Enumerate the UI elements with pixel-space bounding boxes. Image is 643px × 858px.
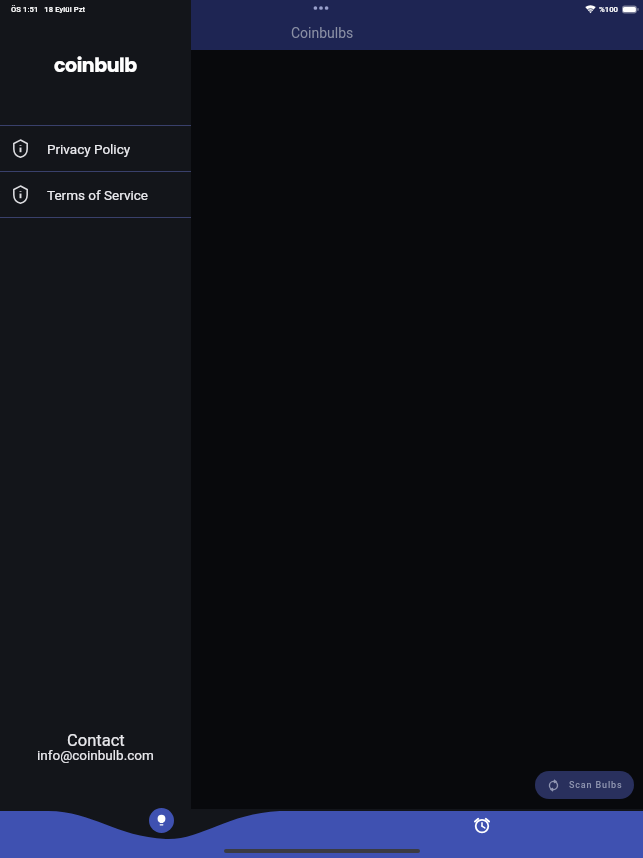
staticText: coinbulb <box>54 52 137 79</box>
staticText: Contact <box>67 731 125 750</box>
staticText: %100 <box>599 5 619 14</box>
staticText: Terms of Service <box>47 187 148 203</box>
button[interactable]: Privacy Policy <box>0 126 191 171</box>
button[interactable]: Close navigation drawer <box>191 0 643 50</box>
staticText: ÖS 1:51 18 Eylül Pzt <box>11 5 86 14</box>
button[interactable]: Bulbs <box>149 808 174 833</box>
button[interactable]: Scan Bulbs <box>535 771 634 799</box>
staticText: Coinbulbs <box>291 25 354 41</box>
staticText: info@coinbulb.com <box>37 747 154 763</box>
button[interactable]: Terms of Service <box>0 172 191 217</box>
staticText: Privacy Policy <box>47 141 131 157</box>
staticText: Scan Bulbs <box>569 780 623 791</box>
button[interactable]: Alarm <box>470 813 494 837</box>
